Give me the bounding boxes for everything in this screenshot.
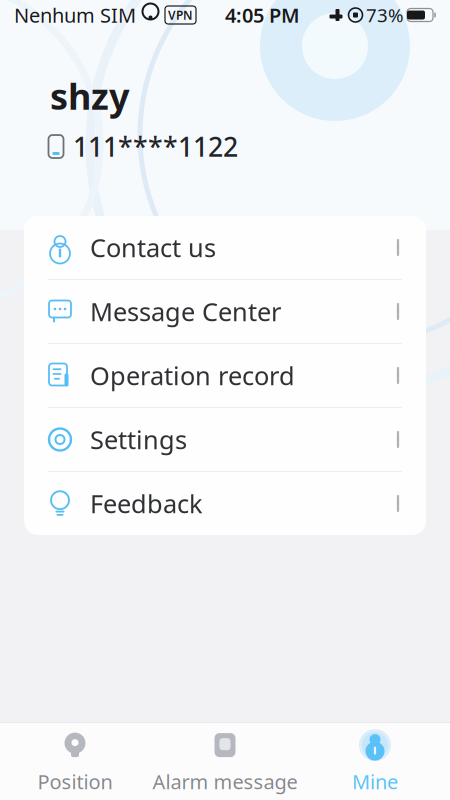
- staticText: Alarm message: [152, 768, 297, 795]
- staticText: Nenhum SIM: [14, 2, 136, 28]
- button[interactable]: Message Center: [24, 280, 426, 343]
- staticText: shzy: [50, 72, 130, 120]
- staticText: VPN: [168, 7, 193, 23]
- button[interactable]: Operation record: [24, 344, 426, 407]
- staticText: 4:05 PM: [225, 2, 300, 28]
- button[interactable]: Position: [0, 723, 150, 800]
- staticText: Feedback: [90, 487, 203, 520]
- button[interactable]: Feedback: [24, 472, 426, 535]
- button[interactable]: Contact us: [24, 216, 426, 279]
- staticText: Operation record: [90, 359, 295, 392]
- staticText: Contact us: [90, 231, 216, 264]
- staticText: Mine: [352, 768, 398, 795]
- staticText: Message Center: [90, 295, 281, 328]
- staticText: Position: [37, 768, 112, 795]
- button[interactable]: Settings: [24, 408, 426, 471]
- staticText: 73%: [366, 3, 404, 27]
- staticText: 111****1122: [73, 129, 238, 164]
- button[interactable]: Mine: [300, 723, 450, 800]
- staticText: Settings: [90, 423, 187, 456]
- button[interactable]: Alarm message: [150, 723, 300, 800]
